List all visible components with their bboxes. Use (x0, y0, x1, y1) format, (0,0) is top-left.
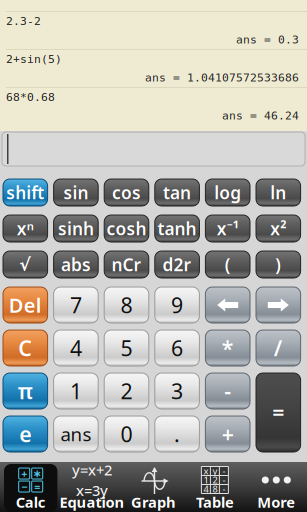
button[interactable]: 0 (104, 416, 149, 452)
button[interactable]: y=x+2 (61, 462, 123, 512)
button[interactable]: √ (3, 251, 48, 278)
staticText: 5 (120, 334, 132, 362)
staticText: - (222, 465, 225, 477)
staticText: ans = 46.24 (222, 109, 299, 122)
button[interactable]: ans (54, 416, 98, 452)
button[interactable]: nCr (104, 251, 149, 278)
staticText: 0 (120, 420, 132, 448)
staticText: 8 (212, 483, 217, 495)
button[interactable]: e (3, 416, 48, 452)
button[interactable]: Move cursor right (256, 287, 301, 323)
button[interactable]: . (155, 416, 199, 452)
button[interactable]: Del (3, 287, 48, 323)
button[interactable]: + (0, 462, 61, 512)
button[interactable]: tan (155, 179, 199, 206)
staticText: 2+sin(5) (6, 52, 62, 66)
staticText: 4 (70, 334, 82, 362)
staticText: − (21, 479, 27, 494)
staticText: y (212, 465, 217, 477)
staticText: 68*0.68 (6, 90, 55, 104)
staticText: + (222, 420, 234, 448)
staticText: / (274, 334, 283, 362)
staticText: sin (63, 181, 88, 204)
button[interactable]: tanh (155, 215, 199, 242)
staticText: sinh (58, 217, 94, 240)
button[interactable]: 6 (155, 330, 199, 366)
staticText: 6 (171, 334, 183, 362)
staticText: x⁻¹ (217, 217, 239, 240)
button[interactable]: sin (54, 179, 98, 206)
button[interactable]: cosh (104, 215, 149, 242)
button[interactable]: sinh (54, 215, 98, 242)
staticText: cos (112, 181, 141, 204)
staticText: ans = 0.3 (236, 33, 299, 46)
staticText: 4 (203, 483, 208, 495)
button[interactable]: - (205, 373, 250, 409)
staticText: 1 (203, 474, 208, 486)
staticText: Calc (16, 492, 46, 512)
button[interactable]: Move cursor left (205, 287, 250, 323)
staticText: π (18, 377, 33, 405)
staticText: abs (61, 253, 91, 276)
button[interactable]: 4 (54, 330, 98, 366)
staticText: ln (270, 181, 286, 204)
button[interactable]: x⁻¹ (205, 215, 250, 242)
button[interactable]: 9 (155, 287, 199, 323)
staticText: cosh (106, 217, 146, 240)
staticText: ∗ (33, 467, 42, 479)
staticText: x² (270, 217, 286, 240)
staticText: . (174, 420, 180, 448)
staticText: 7 (70, 291, 82, 319)
button[interactable]: abs (54, 251, 98, 278)
button[interactable]: Graph (123, 462, 184, 512)
staticText: tan (163, 181, 191, 204)
button[interactable]: More (246, 462, 307, 512)
button[interactable]: / (256, 330, 301, 366)
staticText: shift (6, 181, 44, 204)
button[interactable]: = (256, 373, 301, 452)
staticText: √ (19, 255, 31, 274)
staticText: + (21, 466, 27, 481)
staticText: 2 (120, 377, 132, 405)
button[interactable]: xⁿ (3, 215, 48, 242)
staticText: Table (196, 492, 234, 512)
staticText: = (34, 479, 40, 494)
staticText: ) (275, 253, 281, 276)
staticText: d2r (163, 253, 192, 276)
staticText: 2.3-2 (6, 14, 41, 28)
button[interactable]: x² (256, 215, 301, 242)
button[interactable]: log (205, 179, 250, 206)
staticText: e (19, 420, 31, 448)
staticText: C (18, 334, 32, 362)
staticText: nCr (111, 253, 141, 276)
button[interactable]: * (205, 330, 250, 366)
button[interactable]: 2 (104, 373, 149, 409)
button[interactable]: ( (205, 251, 250, 278)
button[interactable]: π (3, 373, 48, 409)
button[interactable]: shift (3, 179, 48, 206)
button[interactable]: 1 (54, 373, 98, 409)
staticText: 9 (171, 291, 183, 319)
button[interactable]: 8 (104, 287, 149, 323)
button[interactable]: 5 (104, 330, 149, 366)
staticText: 3 (171, 377, 183, 405)
staticText: y=x+2 (72, 460, 112, 479)
staticText: 8 (120, 291, 132, 319)
button[interactable]: x (184, 462, 246, 512)
staticText: Equation (60, 492, 125, 512)
button[interactable]: ln (256, 179, 301, 206)
button[interactable]: cos (104, 179, 149, 206)
staticText: x=3y (76, 480, 108, 500)
button[interactable]: C (3, 330, 48, 366)
button[interactable]: d2r (155, 251, 199, 278)
button[interactable]: + (205, 416, 250, 452)
staticText: xⁿ (17, 217, 34, 240)
staticText: x (203, 465, 208, 477)
staticText: * (222, 334, 234, 362)
staticText: = (272, 398, 284, 427)
button[interactable]: 3 (155, 373, 199, 409)
staticText: ( (225, 253, 231, 276)
staticText: Del (9, 292, 42, 318)
button[interactable]: 7 (54, 287, 98, 323)
button[interactable]: ) (256, 251, 301, 278)
